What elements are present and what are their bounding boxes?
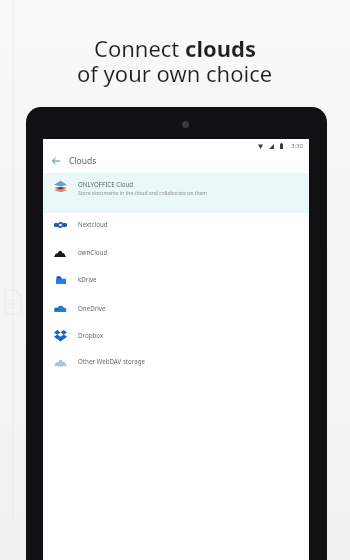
staticText: Connect clouds (94, 33, 256, 63)
staticText: ONLYOFFICE Cloud (78, 180, 134, 188)
button[interactable]: Back (46, 151, 66, 171)
staticText: ownCloud (78, 248, 108, 256)
staticText: 3:30 (291, 142, 303, 150)
button[interactable]: Nextcloud (43, 211, 309, 239)
staticText: Other WebDAV storage (78, 357, 146, 365)
button[interactable]: Dropbox (43, 322, 309, 350)
staticText: of your own choice (77, 58, 273, 88)
button[interactable]: Other WebDAV storage (43, 348, 309, 376)
button[interactable]: kDrive (43, 266, 309, 294)
staticText: Clouds (69, 155, 97, 167)
staticText: kDrive (78, 275, 97, 283)
button[interactable]: ONLYOFFICE Cloud (43, 173, 309, 213)
button[interactable]: OneDrive (43, 295, 309, 323)
button[interactable]: ownCloud (43, 239, 309, 267)
staticText: Nextcloud (78, 220, 108, 228)
staticText: Dropbox (78, 331, 104, 339)
staticText: Store documents in the cloud and collabo… (78, 190, 208, 197)
staticText: OneDrive (78, 304, 106, 312)
